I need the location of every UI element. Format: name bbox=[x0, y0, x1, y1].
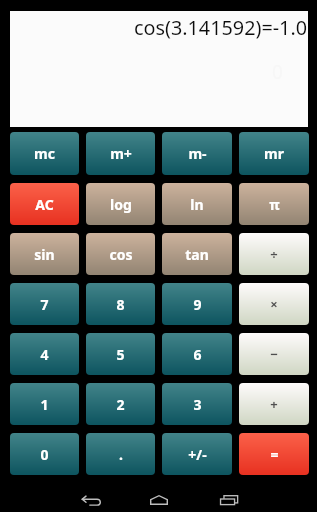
button[interactable]: 6 bbox=[162, 333, 232, 375]
staticText: . bbox=[119, 445, 123, 464]
staticText: 5 bbox=[116, 345, 125, 364]
button[interactable]: log bbox=[86, 183, 155, 225]
staticText: 9 bbox=[193, 295, 202, 314]
staticText: = bbox=[270, 445, 279, 464]
staticText: 4 bbox=[40, 345, 49, 364]
button[interactable]: cos bbox=[86, 233, 155, 275]
staticText: + bbox=[270, 395, 278, 413]
button[interactable]: 7 bbox=[10, 283, 79, 325]
staticText: mr bbox=[264, 144, 284, 163]
button[interactable]: sin bbox=[10, 233, 79, 275]
staticText: m- bbox=[188, 144, 207, 163]
staticText: 3 bbox=[193, 395, 202, 414]
button[interactable]: π bbox=[239, 183, 309, 225]
button[interactable]: mr bbox=[239, 132, 309, 175]
staticText: mc bbox=[34, 144, 55, 163]
button[interactable]: Back bbox=[66, 482, 116, 512]
button[interactable]: + bbox=[239, 383, 309, 425]
button[interactable]: − bbox=[239, 333, 309, 375]
button[interactable]: tan bbox=[162, 233, 232, 275]
button[interactable]: Recent apps bbox=[204, 482, 254, 512]
staticText: 2 bbox=[116, 395, 125, 414]
button[interactable]: 4 bbox=[10, 333, 79, 375]
staticText: log bbox=[110, 195, 132, 214]
staticText: 7 bbox=[40, 295, 49, 314]
button[interactable]: 3 bbox=[162, 383, 232, 425]
button[interactable]: m+ bbox=[86, 132, 155, 175]
button[interactable]: ÷ bbox=[239, 233, 309, 275]
staticText: ÷ bbox=[270, 245, 278, 263]
staticText: AC bbox=[35, 195, 54, 214]
staticText: × bbox=[270, 295, 278, 313]
staticText: +/- bbox=[188, 445, 207, 464]
button[interactable]: mc bbox=[10, 132, 79, 175]
staticText: cos bbox=[109, 245, 133, 264]
button[interactable]: Home bbox=[134, 482, 184, 512]
button[interactable]: = bbox=[239, 433, 309, 475]
button[interactable]: 1 bbox=[10, 383, 79, 425]
button[interactable]: m- bbox=[162, 132, 232, 175]
button[interactable]: . bbox=[86, 433, 155, 475]
staticText: 1 bbox=[40, 395, 49, 414]
staticText: 6 bbox=[193, 345, 202, 364]
button[interactable]: 0 bbox=[10, 433, 79, 475]
staticText: 8 bbox=[116, 295, 125, 314]
staticText: sin bbox=[34, 245, 55, 264]
button[interactable]: 2 bbox=[86, 383, 155, 425]
staticText: − bbox=[270, 345, 278, 363]
button[interactable]: 9 bbox=[162, 283, 232, 325]
button[interactable]: AC bbox=[10, 183, 79, 225]
button[interactable]: +/- bbox=[162, 433, 232, 475]
staticText: m+ bbox=[110, 144, 132, 163]
staticText: 0 bbox=[40, 445, 49, 464]
button[interactable]: × bbox=[239, 283, 309, 325]
staticText: cos(3.141592)=-1.0 bbox=[134, 14, 308, 41]
staticText: ln bbox=[190, 195, 204, 214]
staticText: π bbox=[269, 195, 280, 214]
button[interactable]: ln bbox=[162, 183, 232, 225]
button[interactable]: 5 bbox=[86, 333, 155, 375]
staticText: tan bbox=[185, 245, 209, 264]
button[interactable]: 8 bbox=[86, 283, 155, 325]
